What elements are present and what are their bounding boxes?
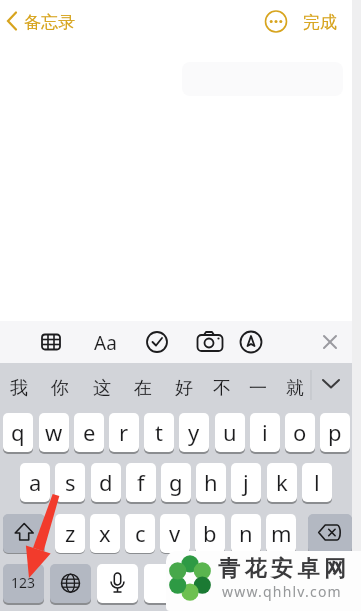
button[interactable]: w [39,413,69,452]
staticText: 一 [249,377,267,400]
staticText: b [203,518,217,548]
button[interactable]: x [90,514,120,553]
button[interactable] [35,327,67,359]
button[interactable]: g [161,463,191,502]
staticText: www.qhhlv.com [222,582,342,601]
button[interactable] [90,327,122,359]
button[interactable]: p [320,413,350,452]
button[interactable]: m [266,514,296,553]
staticText: 这 [93,377,111,400]
button[interactable]: q [3,413,33,452]
button[interactable]: 就 [281,374,309,402]
staticText: h [204,467,218,497]
button[interactable]: l [302,463,332,502]
button[interactable]: 备忘录 [4,8,84,36]
staticText: e [83,417,96,447]
button[interactable]: 一 [244,374,272,402]
staticText: a [29,467,42,497]
button[interactable] [144,564,264,603]
staticText: d [99,467,113,497]
staticText: x [99,518,111,548]
staticText: Aa [94,330,117,356]
staticText: q [11,417,25,447]
button[interactable]: b [195,514,225,553]
staticText: i [262,417,268,447]
button[interactable] [235,327,267,359]
button[interactable]: c [125,514,155,553]
button[interactable] [141,327,173,359]
button[interactable] [308,514,352,553]
staticText: g [169,467,183,497]
staticText: 我 [10,377,28,400]
staticText: c [135,518,146,548]
staticText: u [223,417,237,447]
button[interactable]: d [91,463,121,502]
button[interactable]: j [231,463,261,502]
staticText: s [65,467,76,497]
button[interactable]: 我 [5,374,33,402]
button[interactable]: h [196,463,226,502]
button[interactable]: r [109,413,139,452]
button[interactable]: e [74,413,104,452]
button[interactable]: 不 [208,374,236,402]
staticText: 青花安卓网 [218,555,351,583]
button[interactable]: o [285,413,315,452]
button[interactable]: k [267,463,297,502]
staticText: 不 [213,377,231,400]
button[interactable]: t [144,413,174,452]
staticText: 就 [286,377,304,400]
button[interactable] [194,327,226,359]
button[interactable]: 你 [46,374,74,402]
button[interactable] [314,327,346,359]
button[interactable]: 在 [129,374,157,402]
button[interactable] [97,564,138,603]
staticText: 在 [134,377,152,400]
staticText: k [276,467,288,497]
button[interactable] [50,564,91,603]
button[interactable] [264,10,288,34]
staticText: r [119,417,129,447]
staticText: f [137,467,145,497]
button[interactable]: z [55,514,85,553]
button[interactable]: v [160,514,190,553]
staticText: 备忘录 [24,12,75,33]
button[interactable]: a [20,463,50,502]
staticText: l [314,467,320,497]
staticText: p [328,417,342,447]
staticText: y [188,417,200,447]
staticText: j [243,467,249,497]
button[interactable]: 这 [88,374,116,402]
staticText: z [65,518,76,548]
staticText: m [271,518,292,548]
button[interactable] [3,514,45,553]
staticText: 完成 [303,12,337,33]
staticText: w [45,417,63,447]
staticText: o [293,417,307,447]
staticText: 123 [11,573,36,592]
button[interactable]: 123 [3,564,44,603]
staticText: 你 [51,377,69,400]
button[interactable]: n [231,514,261,553]
button[interactable]: 完成 [294,8,346,36]
button[interactable]: u [215,413,245,452]
button[interactable]: s [55,463,85,502]
button[interactable]: y [179,413,209,452]
button[interactable]: f [126,463,156,502]
button[interactable] [314,370,348,402]
staticText: t [155,417,163,447]
button[interactable]: 好 [170,374,198,402]
staticText: n [239,518,253,548]
staticText: 好 [175,377,193,400]
staticText: v [169,518,181,548]
button[interactable]: i [250,413,280,452]
